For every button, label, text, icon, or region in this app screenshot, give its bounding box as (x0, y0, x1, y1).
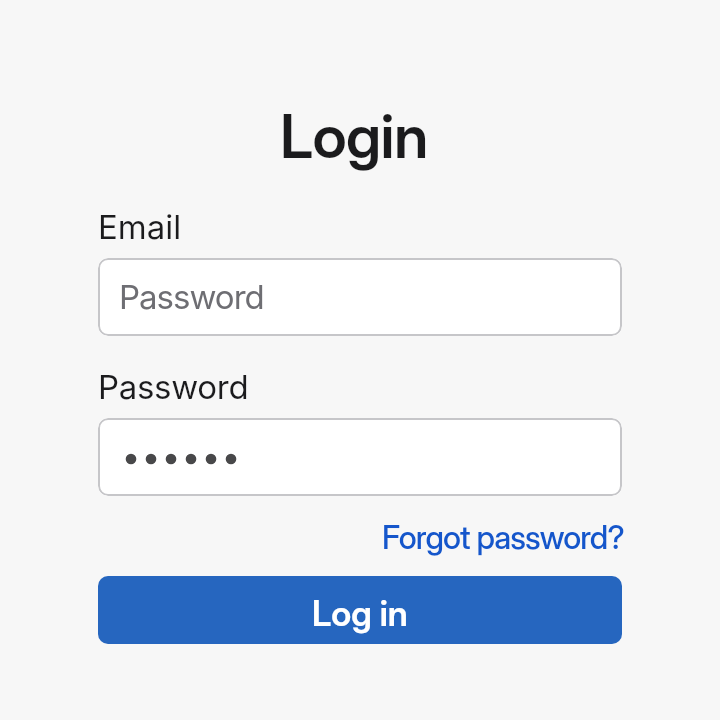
staticText: Password (98, 367, 249, 407)
button[interactable]: Forgot password? (382, 518, 624, 557)
staticText: Login (280, 100, 428, 173)
staticText: Password (119, 277, 264, 317)
button[interactable] (98, 418, 622, 496)
staticText: Email (98, 207, 182, 247)
button[interactable]: Password (98, 258, 622, 336)
staticText: Forgot password? (382, 518, 624, 557)
button[interactable]: Log in (98, 576, 622, 644)
staticText: Log in (312, 592, 408, 634)
